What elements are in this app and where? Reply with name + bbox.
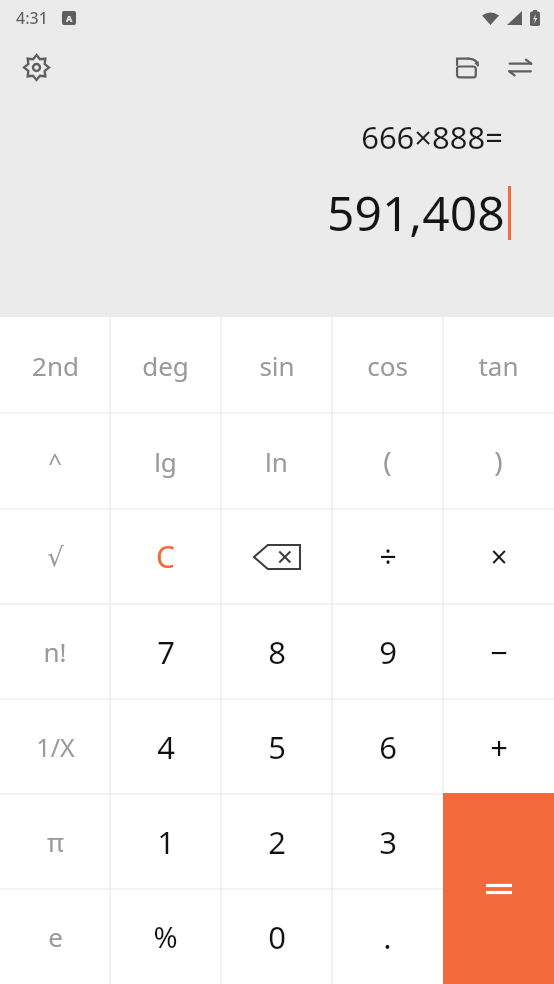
- button[interactable]: [443, 793, 554, 984]
- staticText: 666×888=: [361, 116, 503, 158]
- staticText: 8: [268, 631, 286, 673]
- staticText: ^: [48, 445, 62, 478]
- staticText: −: [490, 631, 508, 673]
- button[interactable]: 4: [110, 699, 221, 794]
- button[interactable]: ln: [221, 413, 332, 509]
- button[interactable]: 3: [332, 794, 443, 889]
- button[interactable]: √: [0, 509, 110, 604]
- staticText: e: [48, 919, 63, 954]
- staticText: +: [490, 726, 508, 768]
- staticText: 9: [379, 631, 397, 673]
- button[interactable]: sin: [221, 317, 332, 413]
- staticText: sin: [259, 348, 295, 383]
- staticText: ÷: [379, 536, 397, 577]
- button[interactable]: −: [443, 604, 554, 699]
- staticText: .: [383, 916, 392, 958]
- button[interactable]: 5: [221, 699, 332, 794]
- staticText: ×: [490, 536, 508, 577]
- staticText: 1: [157, 821, 175, 863]
- button[interactable]: 1/X: [0, 699, 110, 794]
- staticText: tan: [478, 348, 519, 383]
- button[interactable]: 2nd: [0, 317, 110, 413]
- staticText: A: [66, 12, 73, 24]
- staticText: √: [47, 542, 64, 572]
- button[interactable]: ÷: [332, 509, 443, 604]
- other: Backspace: [254, 545, 300, 569]
- staticText: 5: [268, 726, 286, 768]
- staticText: 7: [157, 631, 175, 673]
- staticText: ): [494, 442, 503, 480]
- staticText: deg: [142, 348, 189, 383]
- staticText: 2: [268, 821, 286, 863]
- staticText: 4:31: [16, 7, 48, 29]
- button[interactable]: .: [332, 889, 443, 984]
- button[interactable]: 9: [332, 604, 443, 699]
- button[interactable]: 1: [110, 794, 221, 889]
- button[interactable]: 6: [332, 699, 443, 794]
- button[interactable]: ×: [443, 509, 554, 604]
- staticText: 2nd: [32, 348, 79, 383]
- staticText: C: [156, 536, 175, 577]
- button[interactable]: cos: [332, 317, 443, 413]
- button[interactable]: Settings: [10, 41, 62, 93]
- staticText: 1/X: [36, 730, 75, 764]
- button[interactable]: Rotate screen: [442, 41, 494, 93]
- staticText: n!: [43, 634, 67, 669]
- button[interactable]: deg: [110, 317, 221, 413]
- button[interactable]: Backspace: [221, 509, 332, 604]
- staticText: π: [47, 824, 64, 859]
- staticText: lg: [154, 444, 177, 479]
- button[interactable]: Unit converter: [494, 41, 546, 93]
- button[interactable]: ): [443, 413, 554, 509]
- staticText: 591,408: [327, 180, 505, 245]
- button[interactable]: lg: [110, 413, 221, 509]
- button[interactable]: 7: [110, 604, 221, 699]
- staticText: ln: [265, 444, 288, 479]
- button[interactable]: 8: [221, 604, 332, 699]
- button[interactable]: 2: [221, 794, 332, 889]
- staticText: (: [383, 442, 392, 480]
- button[interactable]: ^: [0, 413, 110, 509]
- button[interactable]: 0: [221, 889, 332, 984]
- staticText: 6: [379, 726, 397, 768]
- button[interactable]: tan: [443, 317, 554, 413]
- button[interactable]: %: [110, 889, 221, 984]
- staticText: %: [153, 917, 178, 956]
- staticText: 4: [157, 726, 175, 768]
- staticText: cos: [367, 348, 408, 383]
- button[interactable]: C: [110, 509, 221, 604]
- button[interactable]: (: [332, 413, 443, 509]
- button[interactable]: π: [0, 794, 110, 889]
- button[interactable]: e: [0, 889, 110, 984]
- staticText: 3: [379, 821, 397, 863]
- staticText: 0: [268, 916, 286, 958]
- button[interactable]: +: [443, 699, 554, 794]
- button[interactable]: n!: [0, 604, 110, 699]
